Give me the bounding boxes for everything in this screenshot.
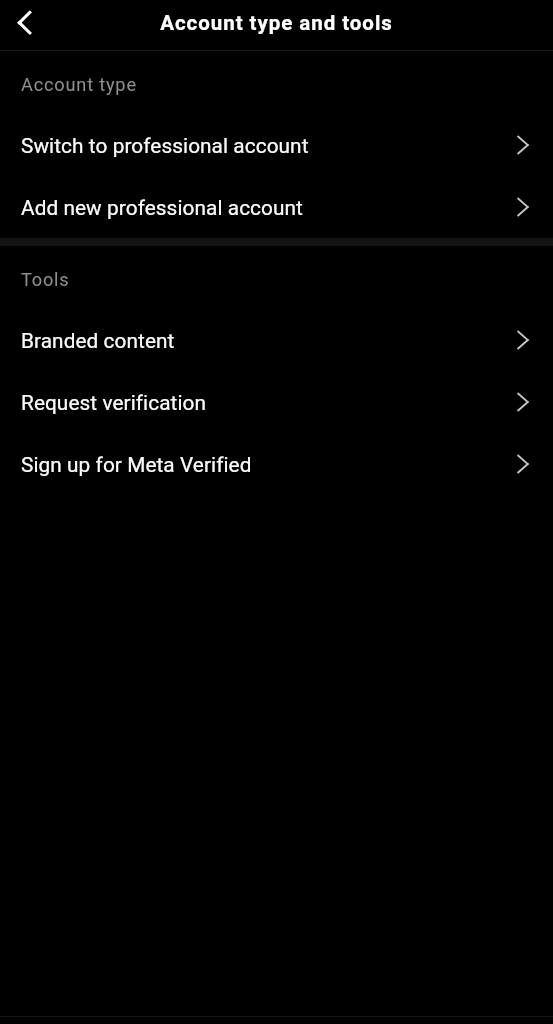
button[interactable]: Back [0,2,47,49]
button[interactable]: Add new professional account [0,176,553,238]
staticText: Request verification [21,391,207,415]
staticText: Account type and tools [160,11,393,35]
staticText: Branded content [21,329,175,353]
button[interactable]: Switch to professional account [0,114,553,176]
button[interactable]: Request verification [0,371,553,433]
staticText: Add new professional account [21,196,303,220]
button[interactable]: Branded content [0,309,553,371]
button[interactable]: Sign up for Meta Verified [0,433,553,495]
staticText: Tools [21,269,70,290]
staticText: Switch to professional account [21,134,309,158]
staticText: Account type [21,74,137,95]
staticText: Sign up for Meta Verified [21,453,252,477]
